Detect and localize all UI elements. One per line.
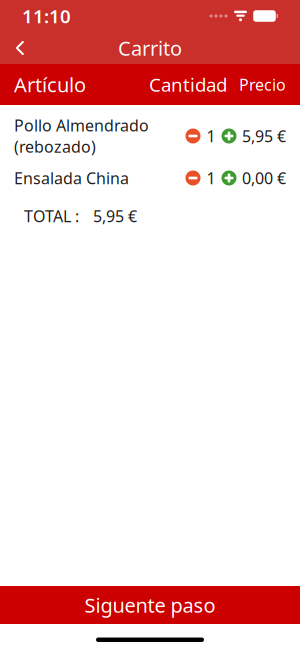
- staticText: Carrito: [118, 35, 182, 61]
- staticText: 11:10: [22, 4, 71, 28]
- staticText: Siguente paso: [84, 592, 215, 618]
- staticText: Cantidad: [149, 72, 227, 97]
- button[interactable]: Decrease quantity: [184, 127, 202, 145]
- staticText: Artículo: [14, 71, 86, 98]
- staticText: 5,95 €: [242, 125, 286, 147]
- staticText: 1: [206, 125, 215, 147]
- staticText: 5,95 €: [93, 205, 137, 227]
- button[interactable]: Back: [0, 32, 40, 64]
- staticText: 1: [206, 167, 215, 189]
- staticText: Pollo Almendrado (rebozado): [14, 115, 149, 157]
- button[interactable]: Increase quantity: [220, 127, 238, 145]
- staticText: 0,00 €: [242, 167, 286, 189]
- staticText: TOTAL :: [24, 205, 79, 227]
- staticText: Precio: [239, 74, 286, 95]
- button[interactable]: Decrease quantity: [184, 169, 202, 187]
- button[interactable]: Increase quantity: [220, 169, 238, 187]
- staticText: Ensalada China: [14, 167, 129, 189]
- button[interactable]: Siguente paso: [0, 586, 300, 624]
